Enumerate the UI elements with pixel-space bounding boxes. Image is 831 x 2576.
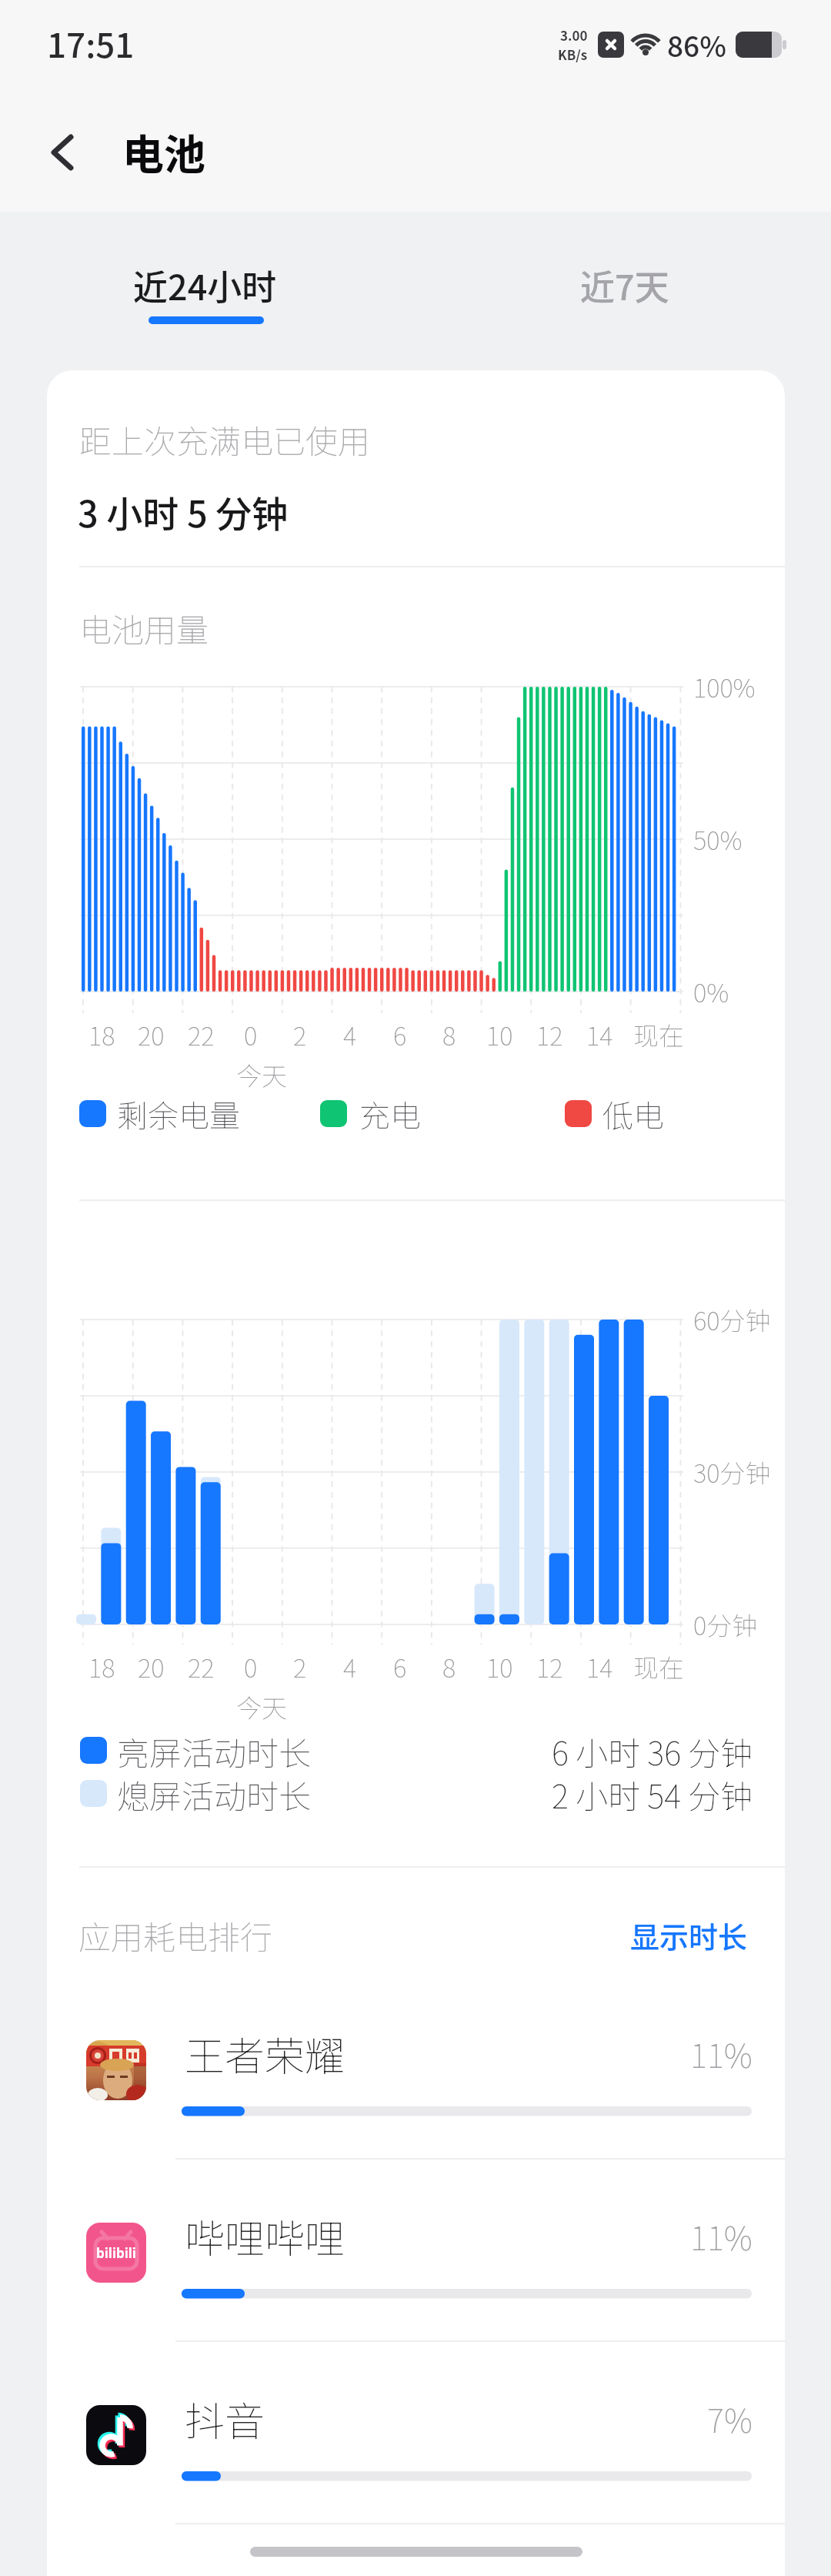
staticText: 17:51	[47, 18, 135, 68]
staticText: 2	[293, 1016, 307, 1053]
staticText: 电池用量	[79, 604, 209, 651]
staticText: 应用耗电排行	[78, 1912, 273, 1959]
button[interactable]	[73, 2017, 785, 2156]
staticText: 30分钟	[693, 1454, 771, 1490]
staticText: 12	[536, 1016, 563, 1053]
staticText: 22	[188, 1016, 215, 1053]
staticText: 0%	[693, 973, 729, 1010]
staticText: 3.00	[560, 25, 588, 45]
staticText: 18	[88, 1648, 115, 1685]
staticText: 近24小时	[133, 260, 277, 310]
staticText: 7%	[707, 2395, 753, 2442]
staticText: 4	[343, 1648, 357, 1685]
staticText: 现在	[633, 1016, 684, 1053]
staticText: 2 小时 54 分钟	[552, 1771, 753, 1818]
staticText: 3 小时 5 分钟	[78, 485, 289, 537]
button[interactable]: 近7天	[509, 246, 740, 323]
staticText: 8	[442, 1016, 456, 1053]
staticText: 今天	[236, 1056, 287, 1093]
button[interactable]	[73, 2200, 785, 2338]
staticText: 低电	[602, 1092, 664, 1136]
staticText: 0	[244, 1016, 258, 1053]
staticText: 距上次充满电已使用	[79, 416, 371, 463]
staticText: 10	[486, 1648, 513, 1685]
staticText: 哔哩哔哩	[185, 2207, 345, 2265]
staticText: 今天	[236, 1688, 287, 1725]
staticText: 剩余电量	[117, 1092, 240, 1136]
staticText: 4	[343, 1016, 357, 1053]
staticText: 86%	[667, 24, 726, 65]
button[interactable]: 近24小时	[89, 246, 320, 323]
staticText: 60分钟	[693, 1301, 771, 1338]
staticText: 6 小时 36 分钟	[552, 1728, 753, 1775]
staticText: 0分钟	[693, 1606, 758, 1643]
staticText: 6	[393, 1016, 407, 1053]
staticText: bilibili	[96, 2244, 136, 2262]
button[interactable]: 显示时长	[539, 1904, 748, 1965]
staticText: 8	[442, 1648, 456, 1685]
staticText: KB/s	[558, 45, 588, 64]
staticText: 抖音	[185, 2390, 265, 2447]
staticText: 王者荣耀	[185, 2025, 345, 2083]
staticText: 现在	[633, 1648, 684, 1685]
staticText: 20	[138, 1648, 165, 1685]
staticText: 50%	[693, 821, 743, 858]
staticText: 100%	[693, 668, 756, 705]
staticText: 0	[244, 1648, 258, 1685]
staticText: 熄屏活动时长	[117, 1771, 312, 1818]
staticText: 6	[393, 1648, 407, 1685]
staticText: 12	[536, 1648, 563, 1685]
staticText: 电池	[122, 122, 205, 182]
staticText: 显示时长	[630, 1914, 748, 1956]
staticText: 近7天	[580, 260, 669, 310]
button[interactable]	[31, 123, 92, 185]
staticText: 亮屏活动时长	[117, 1728, 312, 1775]
staticText: 2	[293, 1648, 307, 1685]
button[interactable]	[73, 2382, 785, 2521]
staticText: 10	[486, 1016, 513, 1053]
staticText: 20	[138, 1016, 165, 1053]
staticText: 14	[586, 1648, 613, 1685]
staticText: 11%	[690, 2030, 753, 2077]
staticText: 14	[586, 1016, 613, 1053]
staticText: 充电	[359, 1092, 421, 1136]
staticText: 22	[188, 1648, 215, 1685]
staticText: 18	[88, 1016, 115, 1053]
staticText: 11%	[690, 2213, 753, 2260]
